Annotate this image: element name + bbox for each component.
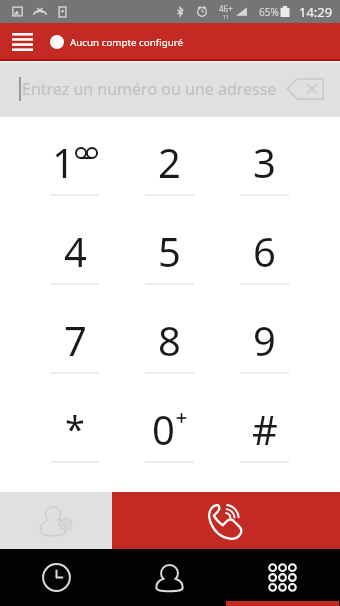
staticText: 11: [223, 14, 229, 21]
button[interactable]: 5: [122, 206, 217, 295]
staticText: 2: [158, 135, 181, 189]
staticText: 46+: [219, 3, 233, 14]
button[interactable]: 6: [217, 206, 312, 295]
button[interactable]: *: [28, 384, 122, 473]
button[interactable]: Backspace: [282, 61, 328, 117]
button[interactable]: Call: [112, 492, 340, 549]
button[interactable]: Recent calls: [0, 549, 113, 606]
staticText: 3: [253, 135, 276, 189]
staticText: Aucun compte configuré: [70, 36, 184, 49]
button[interactable]: #: [217, 384, 312, 473]
button[interactable]: 3: [217, 117, 312, 206]
staticText: 1: [52, 135, 75, 189]
button[interactable]: 8: [122, 295, 217, 384]
staticText: 0: [152, 402, 175, 456]
button[interactable]: 0: [122, 384, 217, 473]
staticText: 14:29: [299, 3, 333, 21]
staticText: Entrez un numéro ou une adresse: [22, 78, 277, 100]
button[interactable]: Dialpad: [226, 549, 339, 606]
staticText: 9: [253, 313, 276, 367]
button[interactable]: 2: [122, 117, 217, 206]
button[interactable]: Contacts: [113, 549, 226, 606]
staticText: #: [252, 402, 278, 456]
button[interactable]: Menu: [0, 23, 44, 61]
staticText: 7: [64, 313, 87, 367]
staticText: *: [65, 404, 85, 453]
button[interactable]: 9: [217, 295, 312, 384]
button[interactable]: 4: [28, 206, 122, 295]
staticText: 6: [253, 224, 276, 278]
staticText: 8: [158, 313, 181, 367]
staticText: 65%: [259, 5, 279, 19]
button[interactable]: 1: [28, 117, 122, 206]
button[interactable]: 7: [28, 295, 122, 384]
staticText: 4: [64, 224, 87, 278]
staticText: 5: [158, 224, 181, 278]
